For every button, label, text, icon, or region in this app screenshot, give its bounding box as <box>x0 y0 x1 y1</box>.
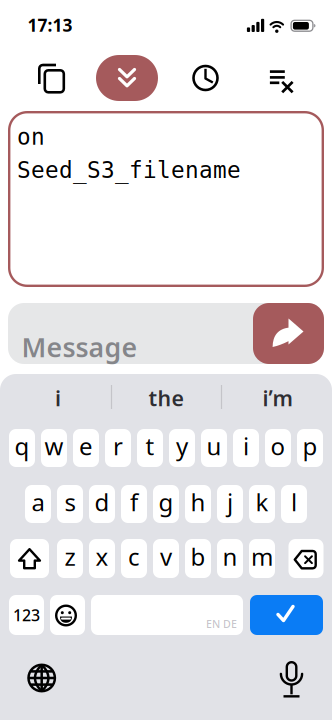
staticText: x <box>95 541 108 572</box>
button[interactable]: Space <box>91 595 243 635</box>
staticText: a <box>31 486 44 518</box>
button[interactable]: Copy <box>26 54 74 102</box>
button[interactable]: Next keyboard <box>20 656 64 700</box>
button[interactable]: History <box>181 54 229 102</box>
staticText: o <box>270 430 285 462</box>
staticText: Message <box>21 329 137 365</box>
button[interactable]: d <box>89 485 115 523</box>
button[interactable]: Shift <box>10 539 49 578</box>
button[interactable]: k <box>249 485 275 523</box>
staticText: t <box>145 430 154 462</box>
staticText: b <box>190 541 205 572</box>
button[interactable]: a <box>25 485 51 523</box>
button[interactable]: h <box>185 485 211 523</box>
button[interactable]: Emoji <box>50 595 85 635</box>
button[interactable]: f <box>121 485 147 523</box>
staticText: EN DE <box>206 617 237 631</box>
staticText: s <box>64 486 75 518</box>
staticText: j <box>227 486 233 518</box>
button[interactable]: q <box>9 429 35 467</box>
button[interactable]: j <box>217 485 243 523</box>
button[interactable]: g <box>153 485 179 523</box>
button[interactable]: i <box>233 429 259 467</box>
button[interactable]: c <box>121 539 147 578</box>
button[interactable]: Scroll to bottom <box>96 55 158 101</box>
staticText: the <box>148 384 183 412</box>
button[interactable]: the <box>116 380 216 416</box>
button[interactable]: Done <box>250 595 323 635</box>
staticText: q <box>14 430 29 462</box>
staticText: g <box>158 486 173 518</box>
button[interactable]: b <box>185 539 211 578</box>
button[interactable]: i <box>8 380 108 416</box>
staticText: on Seed_S3_filename <box>17 124 241 183</box>
staticText: i’m <box>262 384 292 412</box>
button[interactable]: z <box>57 539 83 578</box>
staticText: h <box>190 486 205 518</box>
button[interactable]: i’m <box>227 380 327 416</box>
staticText: n <box>222 541 237 572</box>
staticText: i <box>243 430 249 462</box>
button[interactable]: x <box>89 539 115 578</box>
staticText: 123 <box>13 604 40 626</box>
staticText: m <box>251 541 273 572</box>
staticText: r <box>113 430 123 462</box>
button[interactable]: r <box>105 429 131 467</box>
staticText: 17:13 <box>27 13 72 36</box>
button[interactable]: t <box>137 429 163 467</box>
button[interactable]: u <box>201 429 227 467</box>
button[interactable]: p <box>297 429 323 467</box>
button[interactable]: Delete <box>288 539 323 578</box>
staticText: z <box>64 541 75 572</box>
staticText: v <box>160 541 172 572</box>
staticText: c <box>128 541 140 572</box>
button[interactable]: o <box>265 429 291 467</box>
staticText: f <box>130 486 138 518</box>
button[interactable]: Send <box>253 303 324 364</box>
button[interactable]: Clear text <box>257 54 305 102</box>
button[interactable]: m <box>249 539 275 578</box>
staticText: d <box>94 486 109 518</box>
button[interactable]: y <box>169 429 195 467</box>
button[interactable]: Dictation <box>269 654 313 702</box>
button[interactable]: w <box>41 429 67 467</box>
button[interactable]: e <box>73 429 99 467</box>
staticText: p <box>302 430 317 462</box>
staticText: u <box>206 430 221 462</box>
button[interactable]: 123 <box>9 595 44 635</box>
button[interactable]: s <box>57 485 83 523</box>
button[interactable]: v <box>153 539 179 578</box>
staticText: l <box>291 486 297 518</box>
staticText: y <box>176 430 188 462</box>
staticText: w <box>44 430 63 462</box>
staticText: k <box>255 486 268 518</box>
staticText: e <box>79 430 93 462</box>
button[interactable]: n <box>217 539 243 578</box>
button[interactable]: l <box>281 485 307 523</box>
staticText: i <box>55 384 61 412</box>
